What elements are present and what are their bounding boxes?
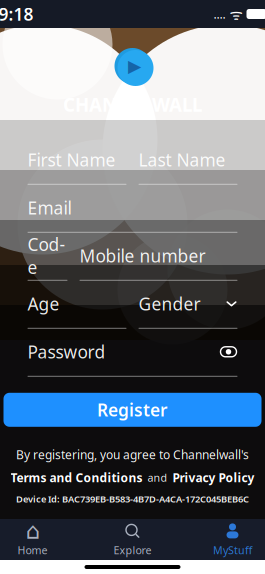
staticText: Register xyxy=(97,398,168,421)
staticText: Device Id: BAC739EB-B583-4B7D-A4CA-172C0… xyxy=(16,493,249,505)
button[interactable]: Privacy Policy xyxy=(172,470,254,486)
button[interactable]: Explore xyxy=(82,519,182,560)
button[interactable]: Terms and Conditions xyxy=(10,470,142,486)
staticText: ▶ xyxy=(128,56,141,76)
staticText: .... xyxy=(213,6,225,22)
staticText: First Name xyxy=(27,148,115,171)
staticText: ᯤ xyxy=(229,4,242,24)
button[interactable]: Register xyxy=(3,393,261,427)
staticText: Home xyxy=(17,543,47,557)
button[interactable]: MyStuff xyxy=(182,519,265,560)
staticText: 9:18 xyxy=(0,2,33,25)
staticText: Email xyxy=(27,196,71,219)
staticText: Explore xyxy=(113,543,151,557)
staticText: Privacy Policy xyxy=(172,470,254,486)
staticText: and xyxy=(147,471,167,485)
staticText: MyStuff xyxy=(213,543,252,557)
staticText: Age xyxy=(27,292,59,315)
staticText: By registering, you agree to Channelwall… xyxy=(16,447,249,463)
staticText: Password xyxy=(27,340,105,363)
staticText: Gender xyxy=(138,292,200,315)
staticText: Mobile number xyxy=(79,244,205,267)
staticText: Code xyxy=(27,233,65,279)
staticText: Last Name xyxy=(138,148,225,171)
staticText: CHANNELWALL xyxy=(63,92,202,117)
button[interactable]: ⌂ xyxy=(0,519,82,560)
staticText: ⌂ xyxy=(25,518,39,544)
staticText: Terms and Conditions xyxy=(10,470,142,486)
